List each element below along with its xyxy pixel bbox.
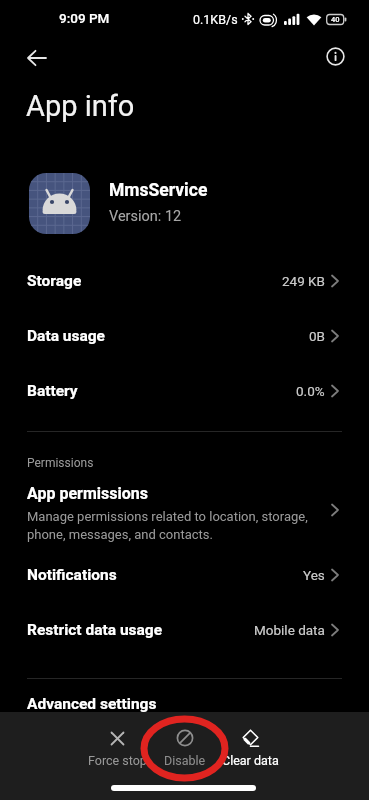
button[interactable]: Clear data xyxy=(217,725,284,787)
staticText: phone, messages, and contacts. xyxy=(27,527,213,542)
button[interactable]: Notifications xyxy=(0,547,369,602)
staticText: Restrict data usage xyxy=(27,621,163,639)
staticText: Mobile data xyxy=(254,622,325,638)
staticText: 40 xyxy=(331,15,340,24)
staticText: App info xyxy=(26,89,135,123)
staticText: 0.1KB/s xyxy=(193,12,238,27)
staticText: Permissions xyxy=(27,456,94,470)
button[interactable]: Restrict data usage xyxy=(0,602,369,657)
staticText: Notifications xyxy=(27,566,117,584)
button[interactable]: Storage xyxy=(0,253,369,308)
staticText: Battery xyxy=(27,382,78,400)
button[interactable] xyxy=(17,42,57,74)
staticText: Disable xyxy=(164,753,206,768)
button[interactable]: Disable xyxy=(151,725,218,787)
staticText: Force stop xyxy=(88,753,147,768)
staticText: 0B xyxy=(309,328,325,344)
staticText: MmsService xyxy=(109,180,208,201)
button[interactable]: Battery xyxy=(0,363,369,418)
staticText: Yes xyxy=(303,567,325,583)
button[interactable]: Data usage xyxy=(0,308,369,363)
staticText: 0.0% xyxy=(296,383,325,399)
staticText: Clear data xyxy=(222,753,279,768)
staticText: App permissions xyxy=(27,484,148,503)
staticText: 249 KB xyxy=(282,273,325,289)
staticText: Data usage xyxy=(27,327,105,345)
staticText: 9:09 PM xyxy=(59,10,110,26)
staticText: Manage permissions related to location, … xyxy=(27,509,308,524)
staticText: Storage xyxy=(27,272,82,290)
staticText: Version: 12 xyxy=(109,208,182,225)
button[interactable]: App permissions xyxy=(0,478,369,542)
button[interactable]: Force stop xyxy=(84,725,151,787)
staticText: Advanced settings xyxy=(27,695,157,713)
button[interactable] xyxy=(320,41,350,71)
